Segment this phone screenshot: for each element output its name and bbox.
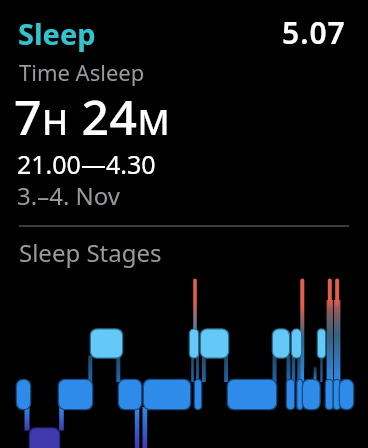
- staticText: 5.07: [282, 12, 346, 53]
- staticText: Sleep Stages: [19, 236, 162, 269]
- button[interactable]: Sleep: [18, 14, 96, 53]
- staticText: Time Asleep: [19, 57, 145, 87]
- staticText: 7H 24M: [14, 84, 171, 149]
- staticText: 3.–4. Nov: [17, 179, 121, 212]
- staticText: 21.00—4.30: [17, 147, 156, 181]
